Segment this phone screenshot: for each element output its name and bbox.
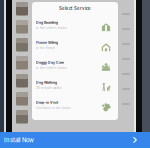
staticText: Dog Walking [36,80,57,85]
staticText: in the sitter's home [36,66,67,70]
staticText: House Sitting [36,40,58,45]
button[interactable]: House Sitting [32,35,118,55]
staticText: Dog Boarding [36,20,58,25]
staticText: Drop-in Visit [36,100,58,105]
button[interactable]: Install Now [0,132,150,148]
button[interactable]: Dog Boarding [32,15,118,35]
staticText: 30 minute walks [36,86,62,90]
staticText: Install Now [4,136,34,144]
button[interactable]: Drop-in Visit [32,95,118,115]
staticText: in my home [36,46,55,50]
staticText: check-ins in my home [36,106,71,110]
button[interactable]: Dog Walking [32,75,118,95]
staticText: Doggy Day Care [36,60,64,65]
staticText: in the sitter's home [36,26,67,30]
staticText: Select Service [59,6,91,11]
button[interactable]: Doggy Day Care [32,55,118,75]
